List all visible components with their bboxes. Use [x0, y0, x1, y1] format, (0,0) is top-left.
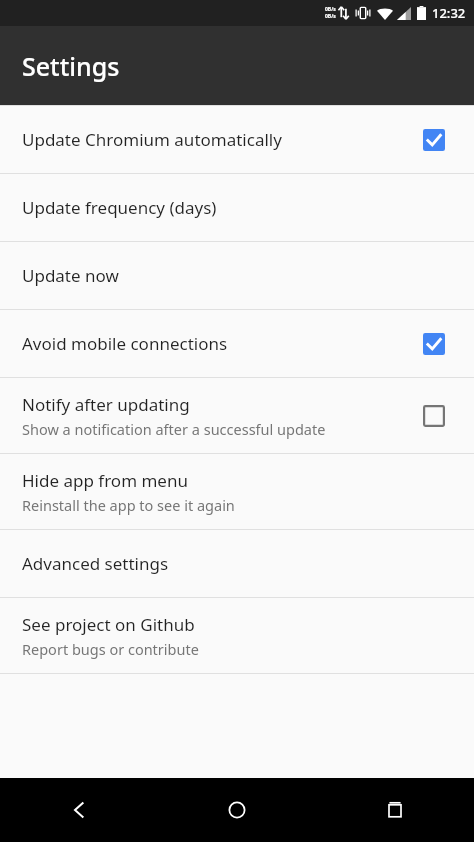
staticText: Show a notification after a successful u…	[22, 419, 326, 439]
staticText: Avoid mobile connections	[22, 332, 228, 355]
staticText: 0B/s	[325, 6, 336, 13]
staticText: Advanced settings	[22, 552, 169, 575]
staticText: Hide app from menu	[22, 469, 188, 492]
staticText: Notify after updating	[22, 393, 190, 416]
button[interactable]: Update Chromium automatically	[0, 106, 474, 173]
button[interactable]: Unchecked	[414, 396, 454, 436]
button[interactable]: Recent apps	[316, 778, 474, 842]
staticText: Update frequency (days)	[22, 196, 217, 219]
button[interactable]: Advanced settings	[0, 530, 474, 597]
button[interactable]: Update now	[0, 242, 474, 309]
button[interactable]: Checked	[414, 120, 454, 160]
staticText: Update now	[22, 264, 119, 287]
button[interactable]: Update frequency (days)	[0, 174, 474, 241]
staticText: Report bugs or contribute	[22, 639, 199, 659]
staticText: Reinstall the app to see it again	[22, 495, 235, 515]
staticText: Settings	[22, 49, 120, 83]
button[interactable]: See project on Github	[0, 598, 474, 673]
button[interactable]: Back	[0, 778, 158, 842]
button[interactable]: Home	[158, 778, 316, 842]
staticText: See project on Github	[22, 613, 195, 636]
button[interactable]: Hide app from menu	[0, 454, 474, 529]
button[interactable]: Notify after updating	[0, 378, 474, 453]
staticText: Update Chromium automatically	[22, 128, 282, 151]
staticText: 12:32	[432, 4, 466, 22]
staticText: 0B/s	[325, 13, 336, 20]
button[interactable]: Avoid mobile connections	[0, 310, 474, 377]
button[interactable]: Checked	[414, 324, 454, 364]
